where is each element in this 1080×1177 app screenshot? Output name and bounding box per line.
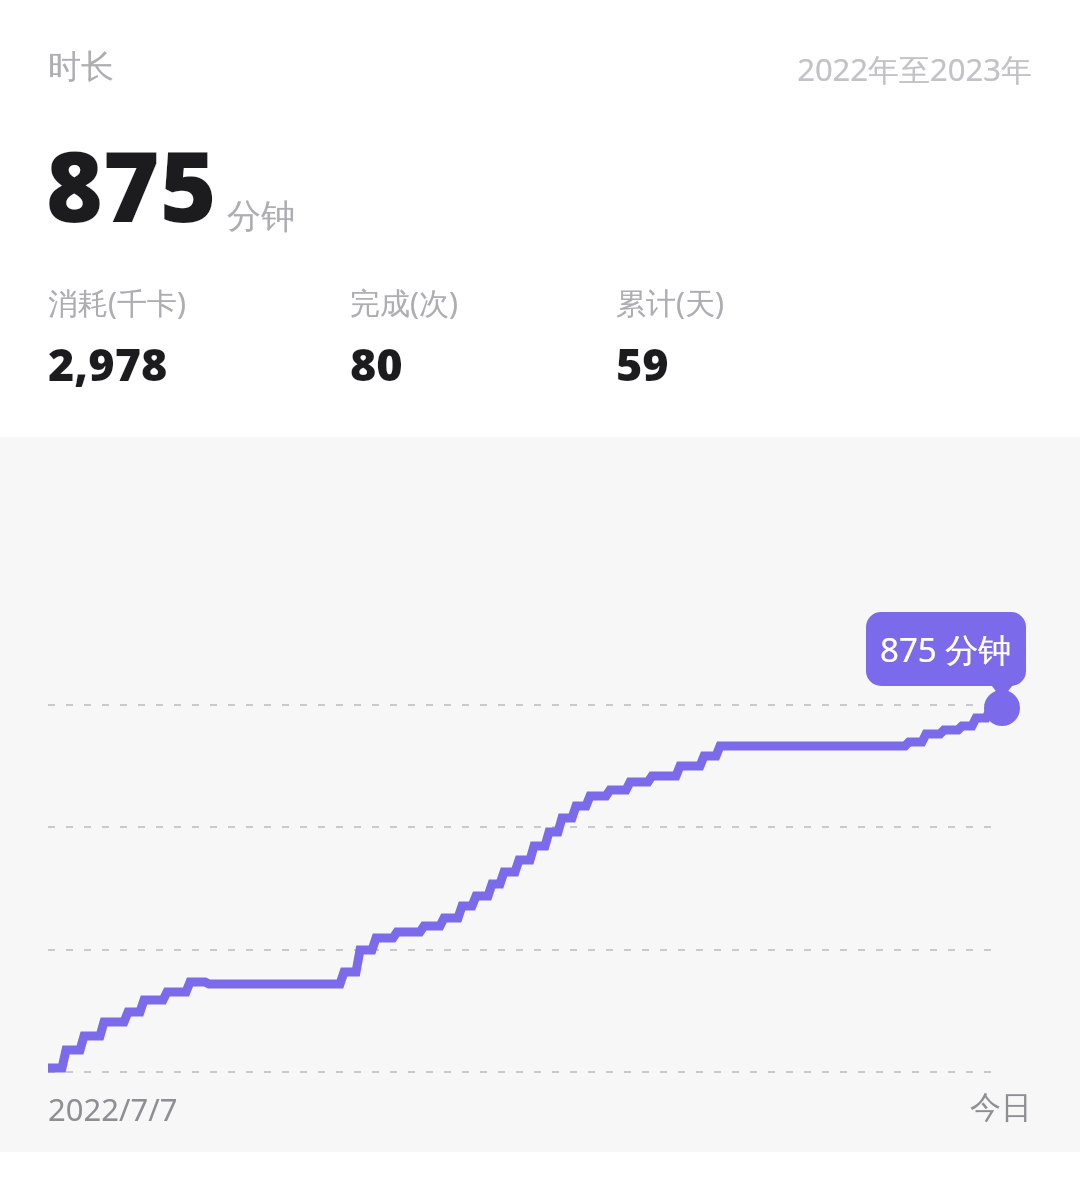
staticText: 80 <box>350 333 403 394</box>
staticText: 时长 <box>48 46 114 88</box>
button[interactable]: 消耗(千卡) <box>48 282 186 394</box>
button[interactable]: 完成(次) <box>350 282 458 394</box>
staticText: 875 分钟 <box>880 627 1012 672</box>
staticText: 分钟 <box>227 195 295 238</box>
staticText: 今日 <box>0 1088 1032 1127</box>
staticText: 2,978 <box>48 333 168 394</box>
staticText: 59 <box>616 333 669 394</box>
staticText: 875 <box>46 118 217 250</box>
staticText: 消耗(千卡) <box>48 282 186 323</box>
staticText: 2022年至2023年 <box>0 48 1032 90</box>
staticText: 累计(天) <box>616 282 724 323</box>
button[interactable]: 875 分钟 <box>866 612 1026 686</box>
staticText: 2022/7/7 <box>48 1088 178 1130</box>
staticText: 完成(次) <box>350 282 458 323</box>
button[interactable]: Duration trend chart <box>0 437 1080 1152</box>
button[interactable]: 累计(天) <box>616 282 724 394</box>
